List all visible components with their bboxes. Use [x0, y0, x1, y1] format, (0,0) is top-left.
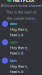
staticText: NETFLIX	[13, 0, 35, 3]
staticText: sam	[10, 39, 18, 44]
staticText: the conversation	[7, 15, 35, 21]
staticText: kim	[10, 58, 17, 63]
staticText: Hey there, how's it	[10, 63, 28, 74]
staticText: This is the start of	[6, 9, 36, 14]
staticText: Welcome to the channel	[0, 3, 41, 8]
staticText: Hey there, how's it	[10, 27, 28, 37]
staticText: alex	[10, 21, 17, 26]
staticText: Hey there, how's it	[10, 45, 28, 56]
